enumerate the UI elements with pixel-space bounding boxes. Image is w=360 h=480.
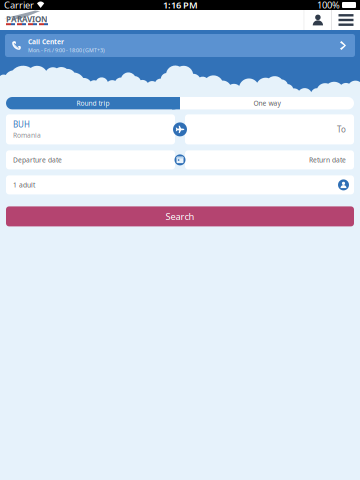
button[interactable]: Swap origin and destination [173,122,187,136]
staticText: PARAVION [6,14,48,24]
button[interactable]: Account [304,10,331,30]
button[interactable]: 1 adult [6,175,354,194]
staticText: Carrier [4,0,34,11]
button[interactable]: Call Center [5,34,355,57]
button[interactable]: Menu [332,10,360,30]
staticText: Departure date [13,155,62,164]
button[interactable]: BUH [6,114,175,144]
button[interactable]: Round trip [6,97,180,109]
staticText: Mon. - Fri. / 9:00 - 18:00 (GMT+3) [28,47,105,54]
staticText: 1 adult [13,180,35,189]
button[interactable]: One way [180,97,354,109]
staticText: To [337,124,346,135]
button[interactable]: Return date [185,150,354,169]
staticText: Return date [309,155,346,164]
staticText: BUH [13,119,30,130]
staticText: Round trip [76,99,109,108]
button[interactable]: Search [6,206,354,226]
button[interactable]: Departure date [6,150,175,169]
staticText: Call Center [28,37,64,46]
staticText: 1:16 PM [163,0,198,11]
button[interactable]: To [185,114,354,144]
staticText: 100% [317,0,340,11]
staticText: One way [253,99,280,108]
staticText: Search [165,210,194,223]
staticText: Romania [13,131,41,140]
